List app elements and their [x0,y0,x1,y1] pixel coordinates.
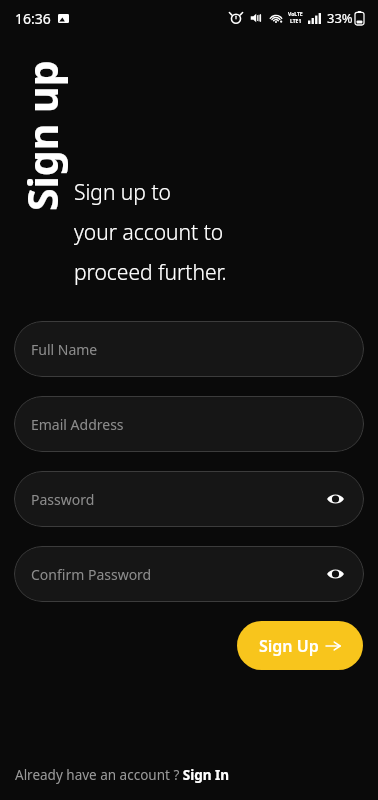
staticText: Password [31,490,95,509]
staticText: 16:36 [15,9,51,28]
button[interactable]: Sign Up [237,621,363,670]
button[interactable]: Already have an account ? Sign In [15,762,230,788]
staticText: LTE1 [290,18,302,25]
button[interactable]: Email Address [14,396,364,452]
button[interactable]: Confirm Password [14,546,364,602]
staticText: Already have an account ? Sign In [15,766,230,784]
button[interactable]: Password [14,471,364,527]
button[interactable]: Show password [320,559,350,589]
staticText: Full Name [31,340,98,359]
staticText: proceed further. [74,258,227,287]
staticText: Confirm Password [31,565,152,584]
staticText: Sign Up [259,635,319,657]
staticText: Sign up [14,60,70,211]
staticText: your account to [74,218,224,247]
button[interactable]: Full Name [14,321,364,377]
staticText: Email Address [31,415,124,434]
button[interactable]: Show password [320,484,350,514]
staticText: VoLTE [288,11,303,18]
staticText: Sign up to [74,178,171,207]
staticText: 33% [327,9,353,27]
